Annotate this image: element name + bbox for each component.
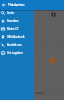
staticText: Ort angeben — [7, 51, 23, 55]
button[interactable]: More options — [50, 11, 56, 17]
staticText: Meine CV — [7, 27, 19, 31]
staticText: Platzkarten — [8, 3, 25, 7]
staticText: Hilfe/Auskunft — [7, 35, 25, 39]
button[interactable]: Kontakt uns — [0, 41, 34, 49]
button[interactable]: Suche — [0, 9, 34, 17]
button[interactable]: Ort angeben — [0, 49, 34, 57]
staticText: Suche — [7, 11, 15, 15]
button[interactable]: Add — [49, 58, 55, 63]
button[interactable]: Favoriten — [0, 17, 34, 25]
button[interactable]: Hilfe/Auskunft — [0, 33, 34, 41]
staticText: Favoriten — [7, 19, 19, 23]
button[interactable]: Meine CV — [0, 25, 34, 33]
staticText: Kontakt uns — [7, 43, 22, 47]
button[interactable]: Back — [0, 1, 8, 9]
